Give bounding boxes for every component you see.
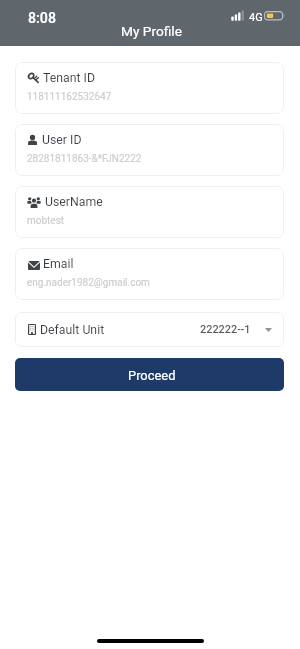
- staticText: eng.nader1982@gmail.com: [27, 277, 150, 289]
- staticText: Proceed: [128, 368, 176, 383]
- staticText: 28281811863-&*FJN2222: [27, 153, 142, 165]
- staticText: 4G: [249, 11, 263, 24]
- staticText: 222222--1: [200, 323, 251, 336]
- button[interactable]: Proceed: [15, 358, 284, 391]
- staticText: 118111162532647: [27, 91, 112, 103]
- staticText: 8:08: [28, 10, 56, 27]
- button[interactable]: Default Unit: [15, 312, 284, 347]
- staticText: My Profile: [121, 23, 182, 39]
- button[interactable]: Email: [15, 248, 284, 300]
- button[interactable]: UserName: [15, 186, 284, 238]
- staticText: UserName: [45, 195, 103, 209]
- staticText: Tenant ID: [43, 71, 96, 85]
- staticText: User ID: [42, 133, 82, 147]
- staticText: mobtest: [27, 215, 65, 227]
- button[interactable]: Tenant ID: [15, 62, 284, 114]
- staticText: Email: [43, 257, 74, 271]
- staticText: Default Unit: [40, 323, 105, 337]
- button[interactable]: User ID: [15, 124, 284, 176]
